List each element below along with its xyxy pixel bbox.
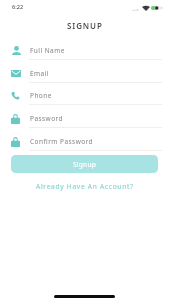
staticText: Signup bbox=[73, 160, 97, 169]
staticText: 6:22 bbox=[12, 3, 24, 11]
staticText: Email bbox=[30, 69, 49, 78]
other: Phone bbox=[11, 91, 20, 100]
staticText: Full Name bbox=[30, 46, 65, 55]
other: Person bbox=[12, 46, 21, 55]
button[interactable]: Signup bbox=[11, 155, 158, 173]
staticText: Phone bbox=[30, 91, 52, 100]
button[interactable]: Person bbox=[0, 37, 169, 60]
button[interactable]: Phone bbox=[0, 82, 169, 105]
button[interactable]: Already Have An Account? bbox=[36, 182, 134, 191]
staticText: Password bbox=[30, 114, 63, 123]
other: Password bbox=[11, 114, 20, 124]
other: Email bbox=[11, 70, 21, 77]
button[interactable]: Password bbox=[0, 128, 169, 151]
staticText: SIGNUP bbox=[67, 20, 103, 31]
other: Password bbox=[11, 137, 20, 147]
staticText: Confirm Password bbox=[30, 137, 94, 146]
button[interactable]: Email bbox=[0, 60, 169, 83]
button[interactable]: Password bbox=[0, 105, 169, 128]
